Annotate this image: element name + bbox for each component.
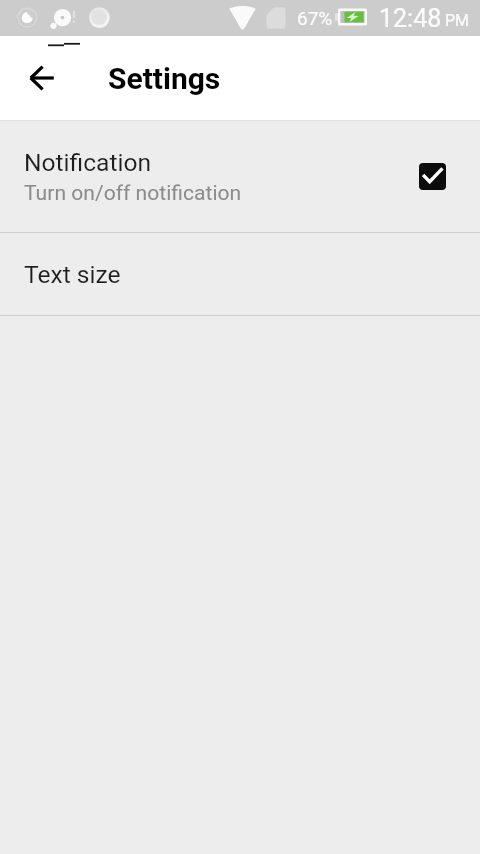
- staticText: PM: [445, 11, 470, 30]
- button[interactable]: Toggle notification: [419, 163, 446, 190]
- staticText: 67%: [297, 7, 333, 29]
- staticText: Turn on/off notification: [24, 180, 242, 205]
- staticText: Text size: [24, 260, 121, 289]
- staticText: Notification: [24, 148, 152, 177]
- button[interactable]: Back: [18, 54, 66, 102]
- button[interactable]: Text size: [0, 233, 480, 315]
- staticText: Settings: [108, 61, 221, 96]
- button[interactable]: Notification: [0, 121, 480, 232]
- staticText: 12:48: [379, 4, 442, 33]
